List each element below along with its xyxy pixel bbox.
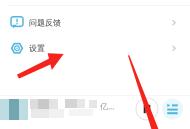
button[interactable]: Playlist bbox=[162, 98, 183, 119]
button[interactable]: 问题反馈 bbox=[0, 10, 190, 35]
staticText: 问题反馈 bbox=[29, 18, 61, 28]
staticText: 设置 bbox=[29, 43, 45, 53]
button[interactable]: Pause bbox=[136, 98, 158, 120]
staticText: 亿… bbox=[100, 101, 114, 112]
button[interactable]: 设置 bbox=[0, 35, 190, 61]
